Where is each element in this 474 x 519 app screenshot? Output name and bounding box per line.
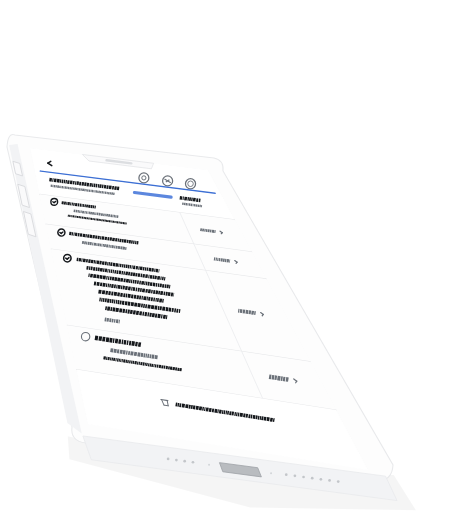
button[interactable]: Ballot Summary phone mockup [0,0,474,519]
